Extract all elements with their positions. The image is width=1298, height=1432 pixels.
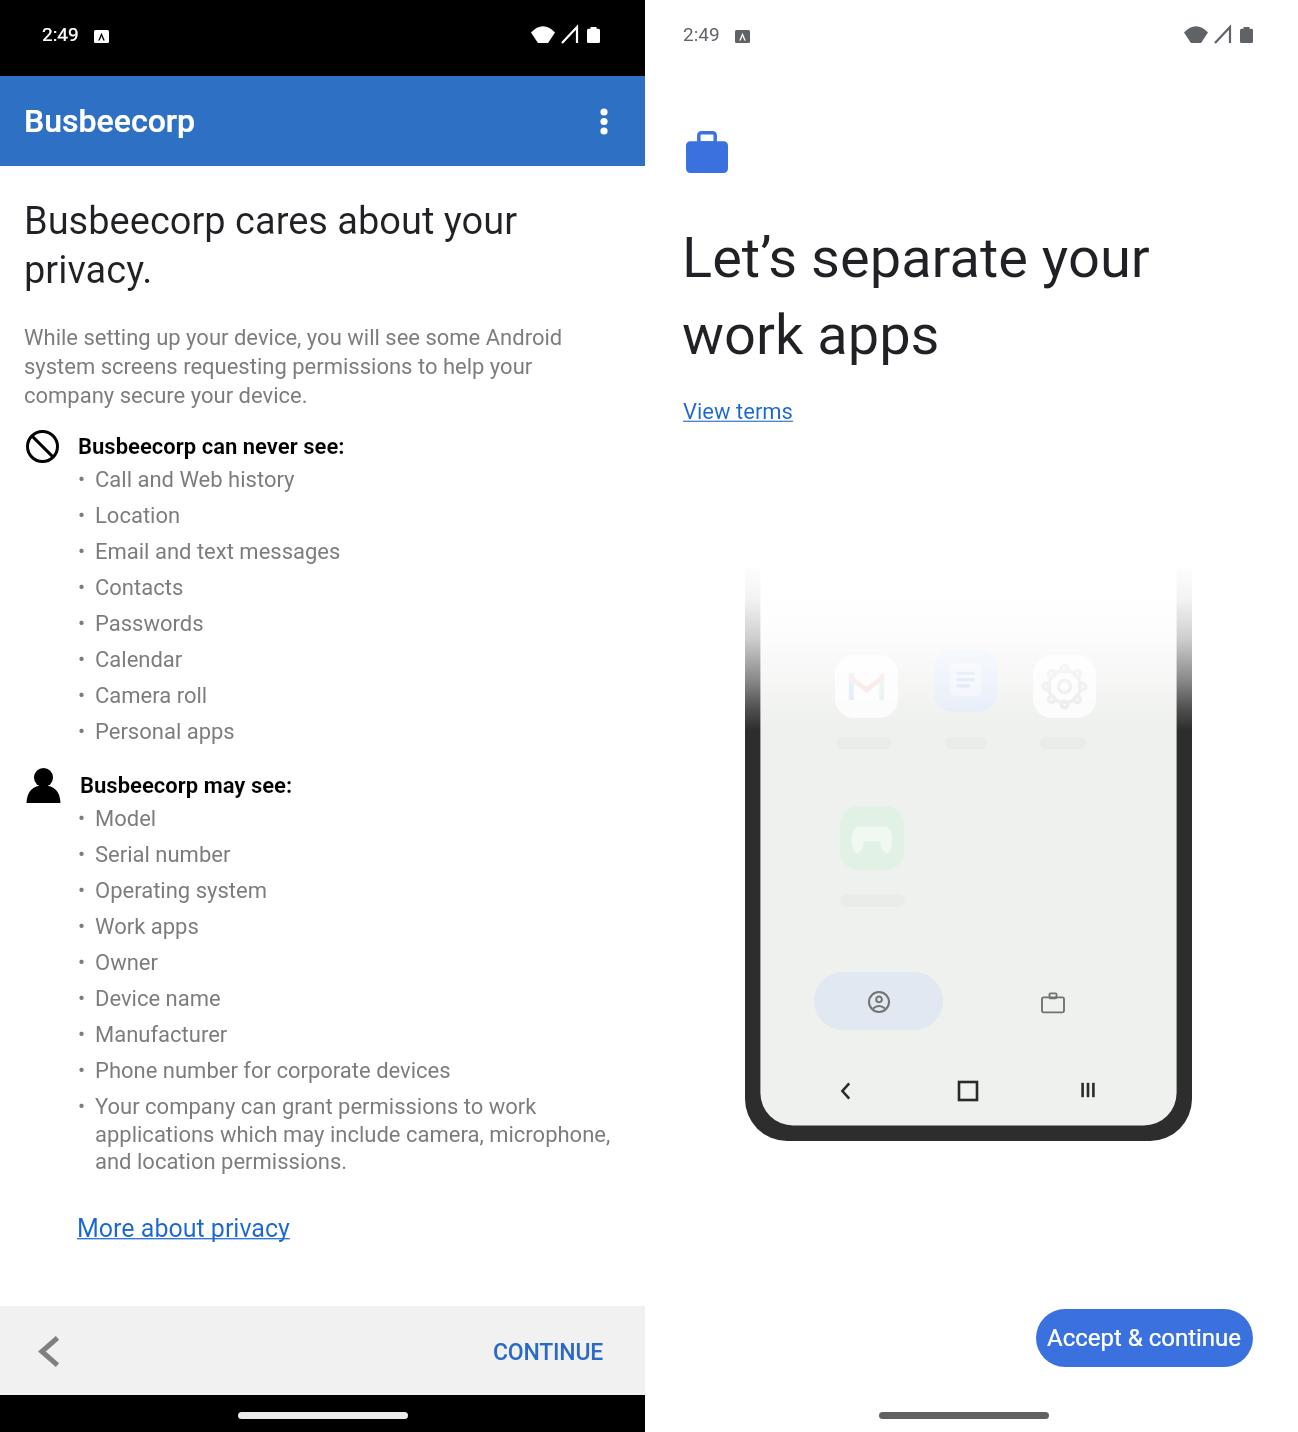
staticText: Phone number for corporate devices <box>95 1058 635 1084</box>
button[interactable]: More about privacy <box>69 1210 298 1247</box>
staticText: • <box>78 842 95 867</box>
staticText: Passwords <box>95 611 635 637</box>
staticText: Location <box>95 503 635 529</box>
staticText: More about privacy <box>77 1214 290 1243</box>
staticText: • <box>78 878 95 903</box>
staticText: Manufacturer <box>95 1022 635 1048</box>
staticText: • <box>78 683 95 708</box>
staticText: Busbeecorp cares about your privacy. <box>24 199 569 292</box>
staticText: Owner <box>95 950 635 976</box>
staticText: • <box>78 611 95 636</box>
staticText: Device name <box>95 986 635 1012</box>
button[interactable]: Accept & continue <box>1036 1309 1253 1367</box>
staticText: Call and Web history <box>95 467 635 493</box>
staticText: Personal apps <box>95 719 635 745</box>
staticText: • <box>78 950 95 975</box>
staticText: • <box>78 806 95 831</box>
staticText: • <box>78 719 95 744</box>
staticText: Your company can grant permissions to wo… <box>95 1094 635 1174</box>
staticText: • <box>78 539 95 564</box>
staticText: • <box>78 914 95 939</box>
staticText: • <box>78 503 95 528</box>
staticText: While setting up your device, you will s… <box>24 325 584 408</box>
button[interactable]: More options <box>579 96 629 146</box>
staticText: • <box>78 647 95 672</box>
staticText: • <box>78 1022 95 1047</box>
staticText: • <box>78 467 95 492</box>
staticText: • <box>78 1058 95 1083</box>
staticText: View terms <box>683 399 793 425</box>
button[interactable]: CONTINUE <box>483 1329 614 1376</box>
staticText: Work apps <box>95 914 635 940</box>
staticText: • <box>78 575 95 600</box>
staticText: • <box>78 1094 95 1119</box>
staticText: Contacts <box>95 575 635 601</box>
button[interactable]: Back <box>24 1327 72 1375</box>
staticText: Camera roll <box>95 683 635 709</box>
staticText: Operating system <box>95 878 635 904</box>
staticText: Accept & continue <box>1047 1324 1242 1352</box>
staticText: Let’s separate your work apps <box>682 225 1227 368</box>
staticText: Model <box>95 806 635 832</box>
staticText: Email and text messages <box>95 539 635 565</box>
staticText: 2:49 <box>42 23 79 45</box>
staticText: CONTINUE <box>493 1339 604 1366</box>
staticText: Calendar <box>95 647 635 673</box>
staticText: Busbeecorp may see: <box>80 773 293 799</box>
staticText: Serial number <box>95 842 635 868</box>
staticText: Busbeecorp can never see: <box>78 434 345 460</box>
staticText: 2:49 <box>683 23 720 45</box>
staticText: Busbeecorp <box>24 102 196 140</box>
button[interactable]: View terms <box>675 395 801 429</box>
staticText: • <box>78 986 95 1011</box>
